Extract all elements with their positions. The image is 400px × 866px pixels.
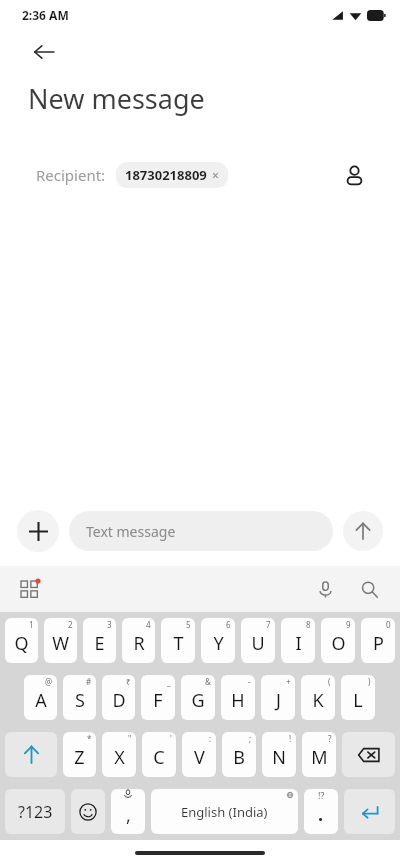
staticText: Text message	[86, 522, 176, 541]
staticText: 1	[29, 619, 34, 630]
button[interactable]: ,	[111, 789, 145, 834]
button[interactable]: Toolbar	[12, 572, 46, 606]
button[interactable]: Text message	[69, 511, 333, 551]
staticText: Z	[74, 745, 85, 770]
staticText: +	[286, 676, 291, 687]
staticText: ?123	[18, 801, 53, 823]
button[interactable]: +	[261, 675, 295, 720]
button[interactable]: 7	[241, 618, 275, 663]
staticText: R	[133, 631, 145, 656]
staticText: *	[87, 733, 92, 744]
staticText: P	[373, 631, 384, 656]
button[interactable]: 3	[83, 618, 116, 663]
staticText: 3	[107, 619, 112, 630]
staticText: 7	[266, 619, 271, 630]
staticText: Q	[14, 631, 29, 656]
staticText: -	[248, 676, 251, 687]
staticText: D	[112, 688, 126, 713]
button[interactable]: Send	[343, 511, 383, 551]
button[interactable]: "	[102, 732, 136, 777]
staticText: )	[368, 676, 371, 687]
button[interactable]: 8	[281, 618, 315, 663]
staticText: 6	[226, 619, 231, 630]
staticText: !?	[318, 789, 325, 801]
staticText: '	[170, 733, 172, 744]
staticText: M	[311, 745, 328, 770]
button[interactable]: 18730218809	[116, 162, 228, 188]
staticText: H	[231, 688, 245, 713]
button[interactable]: !?	[304, 789, 338, 834]
staticText: ?	[328, 733, 332, 744]
button[interactable]: 1	[5, 618, 38, 663]
staticText: E	[94, 631, 105, 656]
staticText: English (India)	[181, 803, 268, 821]
staticText: T	[173, 631, 184, 656]
staticText: Y	[213, 631, 224, 656]
button[interactable]: 2	[44, 618, 77, 663]
button[interactable]: Backspace	[342, 732, 395, 777]
staticText: J	[276, 688, 281, 713]
button[interactable]: ?123	[5, 789, 65, 834]
button[interactable]: '	[142, 732, 176, 777]
staticText: B	[233, 745, 245, 770]
button[interactable]: ;	[222, 732, 256, 777]
staticText: New message	[28, 80, 205, 117]
staticText: Recipient:	[36, 165, 106, 185]
staticText: X	[114, 745, 125, 770]
button[interactable]: @	[24, 675, 57, 720]
button[interactable]: *	[63, 732, 96, 777]
button[interactable]: Choose contact	[334, 155, 374, 195]
staticText: I	[295, 631, 302, 656]
button[interactable]: ₹	[102, 675, 135, 720]
button[interactable]: Back	[22, 30, 66, 74]
staticText: O	[331, 631, 346, 656]
staticText: S	[75, 688, 85, 713]
button[interactable]: Add attachment	[17, 510, 59, 552]
staticText: 4	[146, 619, 151, 630]
button[interactable]: &	[181, 675, 215, 720]
staticText: .	[318, 802, 324, 827]
staticText: U	[251, 631, 265, 656]
button[interactable]: Search	[352, 572, 386, 606]
staticText: @	[45, 676, 53, 687]
staticText: 5	[186, 619, 191, 630]
staticText: F	[153, 688, 163, 713]
button[interactable]: -	[221, 675, 255, 720]
button[interactable]: !	[262, 732, 296, 777]
button[interactable]: (	[301, 675, 335, 720]
staticText: K	[312, 688, 324, 713]
button[interactable]: )	[341, 675, 375, 720]
staticText: _	[167, 676, 171, 687]
staticText: C	[153, 745, 165, 770]
staticText: ×	[212, 167, 219, 183]
staticText: &	[205, 676, 211, 687]
button[interactable]: 5	[161, 618, 195, 663]
staticText: ₹	[126, 676, 131, 687]
button[interactable]: Shift	[5, 732, 57, 777]
staticText: :	[209, 733, 212, 744]
staticText: 9	[346, 619, 351, 630]
button[interactable]: 4	[122, 618, 155, 663]
button[interactable]: Emoji	[71, 789, 105, 834]
staticText: W	[52, 631, 69, 656]
button[interactable]: 6	[201, 618, 235, 663]
button[interactable]: Voice input	[308, 572, 342, 606]
staticText: 0	[386, 619, 391, 630]
staticText: ;	[249, 733, 252, 744]
button[interactable]: 0	[361, 618, 395, 663]
staticText: 2	[68, 619, 73, 630]
staticText: 8	[306, 619, 311, 630]
button[interactable]: ?	[302, 732, 336, 777]
button[interactable]: English (India)	[151, 789, 298, 834]
button[interactable]: :	[182, 732, 216, 777]
staticText: N	[272, 745, 286, 770]
staticText: 2:36 AM	[22, 7, 69, 23]
staticText: #	[86, 676, 92, 687]
staticText: L	[353, 688, 363, 713]
button[interactable]: Enter	[344, 789, 395, 834]
staticText: ,	[126, 803, 131, 828]
button[interactable]: 9	[321, 618, 355, 663]
button[interactable]: #	[63, 675, 96, 720]
staticText: (	[328, 676, 331, 687]
button[interactable]: _	[141, 675, 175, 720]
